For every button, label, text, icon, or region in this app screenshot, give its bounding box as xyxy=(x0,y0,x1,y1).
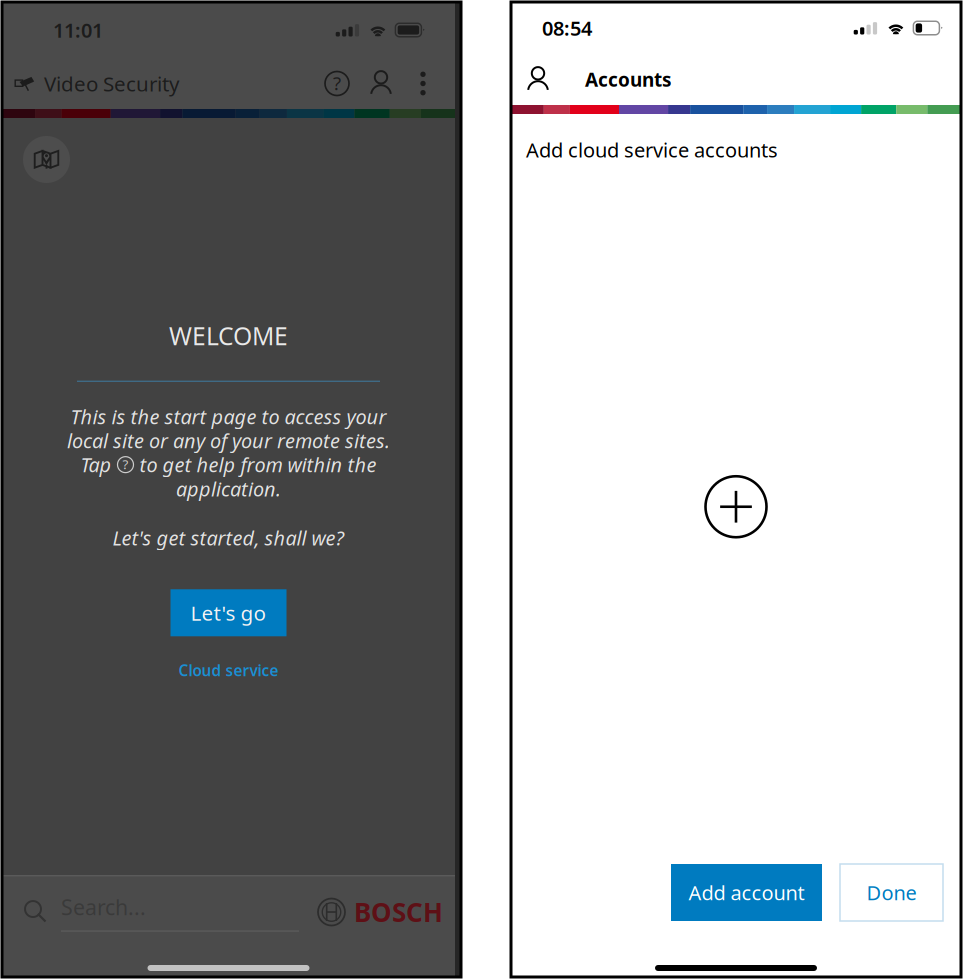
button[interactable]: Let's go xyxy=(170,589,286,636)
button[interactable]: Account xyxy=(525,66,551,93)
staticText: ? xyxy=(333,70,341,96)
button[interactable]: Search xyxy=(24,892,299,932)
button[interactable]: Account xyxy=(368,70,394,97)
staticText: Video Security xyxy=(44,69,179,97)
button[interactable]: More options xyxy=(411,70,435,97)
staticText: WELCOME xyxy=(169,319,288,353)
staticText: Done xyxy=(866,879,916,906)
staticText: ? xyxy=(122,455,128,473)
button[interactable]: Help xyxy=(325,71,349,95)
button[interactable]: Add account xyxy=(671,864,822,921)
button[interactable]: Site map xyxy=(23,136,70,183)
staticText: application. xyxy=(176,475,281,502)
button[interactable]: Cloud service xyxy=(178,659,278,681)
staticText: Cloud service xyxy=(178,660,278,681)
staticText: local site or any of your remote sites. xyxy=(67,427,390,454)
staticText: Accounts xyxy=(585,67,672,92)
button[interactable]: Video Security xyxy=(14,69,179,97)
staticText: Let's get started, shall we? xyxy=(112,524,344,551)
staticText: Tap xyxy=(80,451,111,478)
button[interactable]: Add account xyxy=(705,476,766,537)
staticText: Add account xyxy=(688,879,804,906)
staticText: Let's go xyxy=(190,599,266,627)
staticText: 11:01 xyxy=(53,16,103,44)
staticText: BOSCH xyxy=(354,894,443,930)
staticText: 08:54 xyxy=(542,14,592,42)
staticText: This is the start page to access your xyxy=(70,403,386,430)
staticText: to get help from within the xyxy=(139,451,376,478)
staticText: Search... xyxy=(61,892,146,921)
staticText: Add cloud service accounts xyxy=(526,136,778,163)
button[interactable]: Done xyxy=(840,864,943,921)
